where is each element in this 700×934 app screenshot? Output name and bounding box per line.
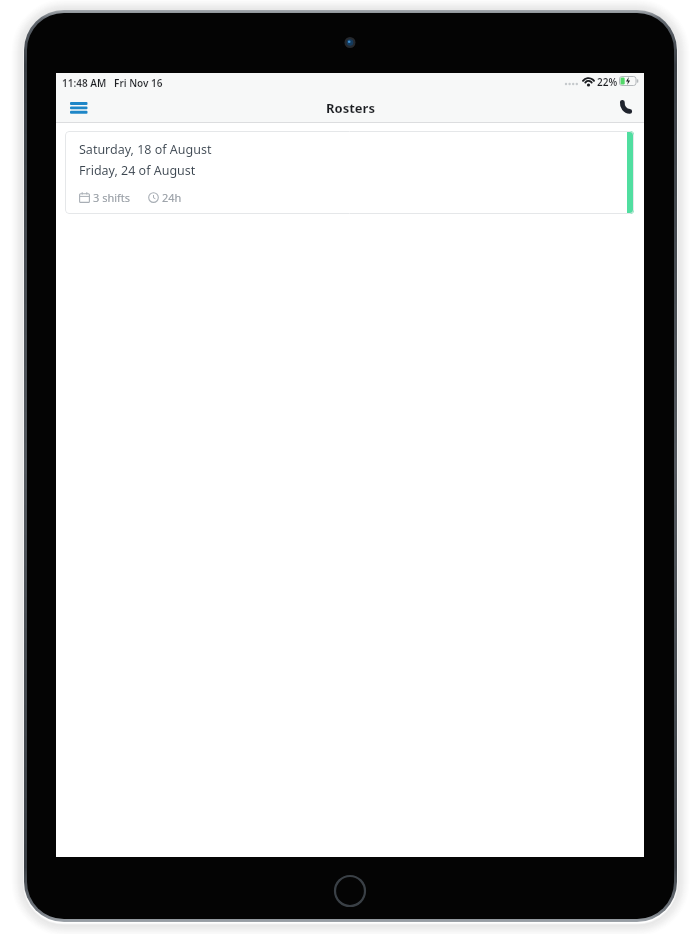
button[interactable] (64, 95, 94, 121)
staticText: 11:48 AM (62, 76, 107, 90)
staticText: 22% (597, 75, 618, 89)
staticText: Rosters (326, 99, 375, 117)
staticText: Friday, 24 of August (79, 162, 196, 179)
button[interactable]: Saturday, 18 of August (65, 131, 634, 214)
staticText: 3 shifts (93, 190, 131, 205)
staticText: Fri Nov 16 (114, 76, 163, 90)
staticText: Saturday, 18 of August (79, 141, 212, 158)
button[interactable] (610, 95, 642, 121)
staticText: 24h (162, 190, 182, 205)
